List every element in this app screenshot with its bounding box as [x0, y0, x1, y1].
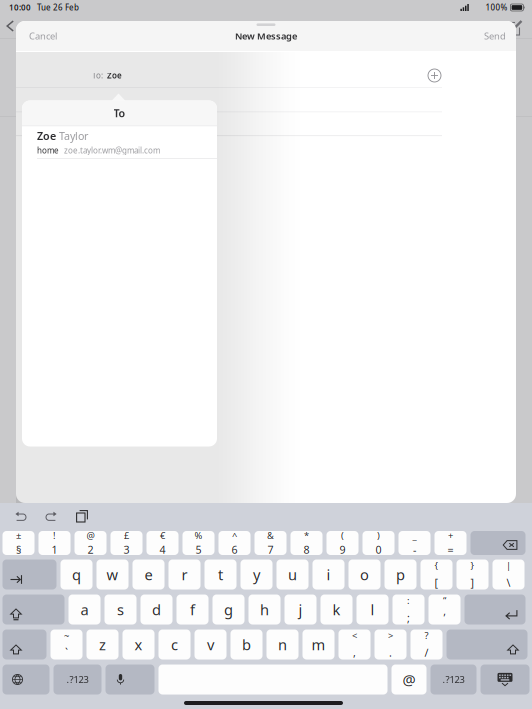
button[interactable]: p: [384, 559, 416, 589]
button[interactable]: Delete: [470, 531, 525, 555]
button[interactable]: r: [168, 559, 200, 589]
button[interactable]: Back: [6, 20, 14, 32]
button[interactable]: :: [392, 594, 424, 624]
button[interactable]: t: [204, 559, 236, 589]
button[interactable]: h: [248, 594, 280, 624]
button[interactable]: }: [456, 559, 488, 589]
button[interactable]: i: [312, 559, 344, 589]
button[interactable]: Compose: [505, 20, 523, 37]
button[interactable]: *: [290, 531, 322, 555]
button[interactable]: x: [122, 629, 154, 659]
button[interactable]: (: [326, 531, 358, 555]
button[interactable]: Dictation: [105, 664, 154, 694]
staticText: 0: [375, 543, 381, 557]
button[interactable]: f: [176, 594, 208, 624]
button[interactable]: ): [362, 531, 394, 555]
button[interactable]: o: [348, 559, 380, 589]
button[interactable]: Add recipient: [425, 66, 444, 85]
button[interactable]: >: [374, 629, 406, 659]
button[interactable]: ±: [2, 531, 34, 555]
staticText: x: [134, 635, 142, 654]
button[interactable]: q: [60, 559, 92, 589]
staticText: {: [434, 559, 438, 572]
button[interactable]: u: [276, 559, 308, 589]
button[interactable]: “: [428, 594, 460, 624]
button[interactable]: a: [68, 594, 100, 624]
button[interactable]: k: [320, 594, 352, 624]
button[interactable]: Shift: [446, 629, 527, 659]
button[interactable]: @: [391, 664, 426, 694]
button[interactable]: s: [104, 594, 136, 624]
button[interactable]: %: [182, 531, 214, 555]
button[interactable]: g: [212, 594, 244, 624]
button[interactable]: £: [110, 531, 142, 555]
staticText: £: [124, 529, 129, 542]
staticText: k: [332, 600, 340, 619]
staticText: Zoe: [37, 129, 56, 143]
staticText: .?123: [66, 673, 88, 686]
staticText: c: [171, 635, 178, 654]
button[interactable]: Send: [480, 24, 510, 48]
staticText: To: [113, 106, 125, 120]
staticText: Send: [484, 30, 506, 42]
button[interactable]: j: [284, 594, 316, 624]
button[interactable]: z: [86, 629, 118, 659]
button[interactable]: {: [420, 559, 452, 589]
button[interactable]: ?: [410, 629, 442, 659]
button[interactable]: l: [356, 594, 388, 624]
button[interactable]: Return: [464, 594, 525, 624]
button[interactable]: +: [434, 531, 466, 555]
button[interactable]: y: [240, 559, 272, 589]
button[interactable]: @: [74, 531, 106, 555]
button[interactable]: m: [302, 629, 334, 659]
staticText: z: [99, 635, 106, 654]
staticText: _: [412, 529, 416, 542]
staticText: -: [413, 543, 416, 557]
button[interactable]: Undo: [10, 506, 32, 527]
button[interactable]: €: [146, 531, 178, 555]
button[interactable]: !: [38, 531, 70, 555]
button[interactable]: Cancel: [25, 24, 61, 48]
staticText: m: [311, 635, 325, 654]
staticText: y: [253, 565, 260, 584]
staticText: o: [360, 565, 369, 584]
staticText: 4: [159, 543, 165, 557]
staticText: b: [242, 635, 251, 654]
button[interactable]: ^: [218, 531, 250, 555]
button[interactable]: n: [266, 629, 298, 659]
button[interactable]: Caps Lock: [2, 594, 64, 624]
button[interactable]: v: [194, 629, 226, 659]
staticText: =: [447, 543, 453, 557]
staticText: ;: [407, 611, 410, 625]
button[interactable]: d: [140, 594, 172, 624]
button[interactable]: <: [338, 629, 370, 659]
button[interactable]: e: [132, 559, 164, 589]
button[interactable]: Tab: [2, 559, 56, 589]
button[interactable]: Next keyboard: [2, 664, 49, 694]
staticText: a: [80, 600, 88, 619]
staticText: ,: [353, 646, 356, 660]
staticText: ): [377, 529, 380, 542]
staticText: i: [326, 565, 330, 584]
staticText: New Message: [235, 30, 297, 42]
button[interactable]: w: [96, 559, 128, 589]
button[interactable]: Numbers: [53, 664, 101, 694]
button[interactable]: &: [254, 531, 286, 555]
button[interactable]: Zoe: [22, 126, 217, 158]
button[interactable]: _: [398, 531, 430, 555]
button[interactable]: ~: [50, 629, 82, 659]
button[interactable]: Redo: [40, 506, 62, 527]
button[interactable]: space: [158, 664, 387, 694]
staticText: :: [407, 594, 410, 607]
button[interactable]: b: [230, 629, 262, 659]
staticText: 1: [51, 543, 57, 557]
staticText: %: [194, 529, 202, 542]
button[interactable]: Paste: [71, 505, 94, 528]
button[interactable]: c: [158, 629, 190, 659]
staticText: j: [298, 600, 302, 619]
button[interactable]: Shift: [2, 629, 46, 659]
button[interactable]: Hide keyboard: [480, 664, 529, 694]
button[interactable]: Numbers: [430, 664, 476, 694]
button[interactable]: |: [492, 559, 524, 589]
staticText: *: [304, 529, 309, 542]
